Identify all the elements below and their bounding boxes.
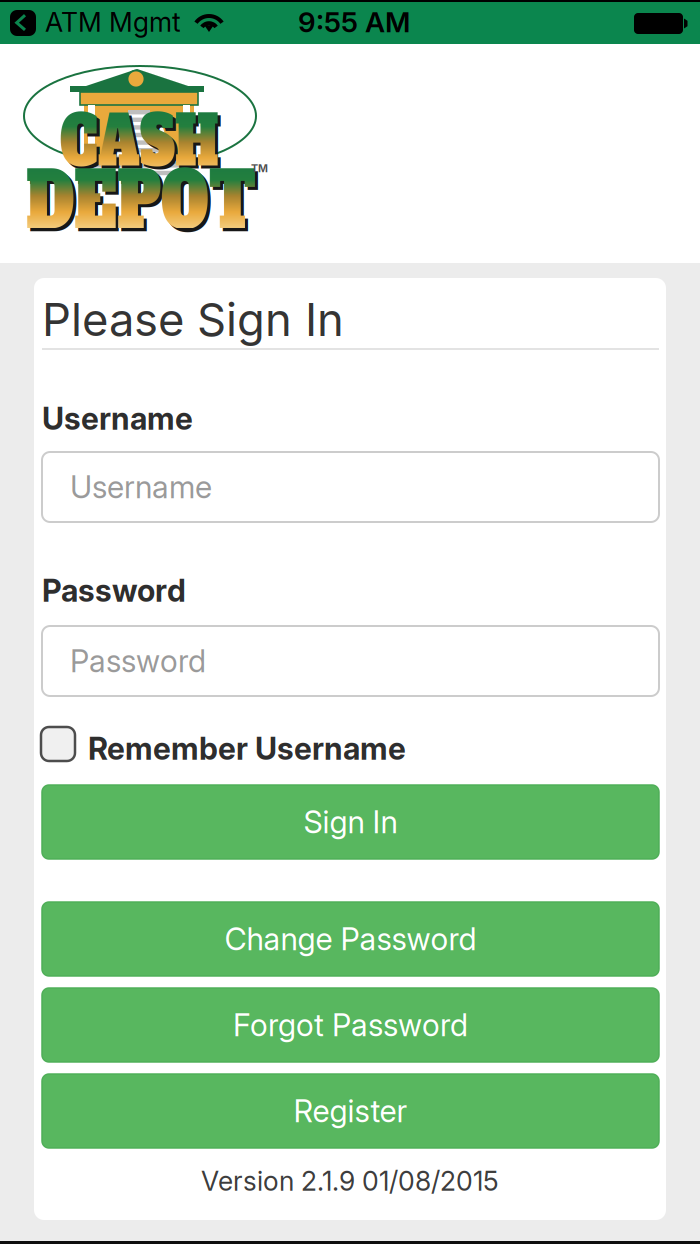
staticText: ATM Mgmt [45,6,181,38]
staticText: Username [42,400,193,437]
staticText: Register [293,1092,407,1129]
staticText: Please Sign In [42,292,344,347]
staticText: TM [251,162,268,175]
button[interactable]: Remember Username [34,724,434,764]
staticText: CASH [63,98,222,169]
button[interactable]: Change Password [42,902,659,976]
staticText: Password [70,642,206,679]
button[interactable]: Sign In [42,785,659,859]
button[interactable]: Password [42,626,659,696]
button[interactable]: Username [42,452,659,522]
staticText: Forgot Password [233,1006,468,1043]
staticText: Version 2.1.9 01/08/2015 [201,1165,499,1197]
button[interactable]: Forgot Password [42,988,659,1062]
button[interactable]: Back to ATM Mgmt [0,0,186,44]
staticText: Username [70,468,212,505]
button[interactable]: Register [42,1074,659,1148]
staticText: Password [42,572,186,609]
staticText: Change Password [224,920,476,957]
staticText: DEPOT [29,151,259,233]
staticText: Remember Username [88,730,406,767]
staticText: Sign In [303,803,397,840]
staticText: 9:55 AM [298,5,410,39]
